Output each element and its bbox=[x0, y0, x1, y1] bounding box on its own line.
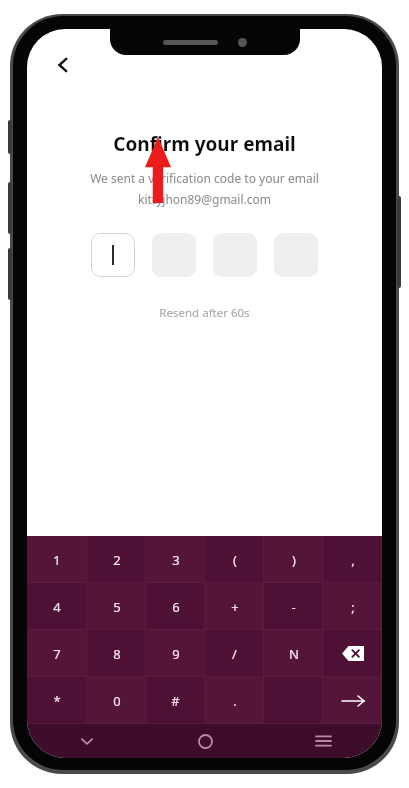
button[interactable]: * bbox=[27, 677, 87, 724]
button[interactable]: Backspace bbox=[323, 630, 382, 677]
button[interactable]: ) bbox=[264, 536, 323, 583]
button[interactable]: # bbox=[146, 677, 205, 724]
button[interactable]: ; bbox=[323, 583, 382, 630]
button[interactable]: Recents bbox=[264, 724, 382, 758]
button[interactable]: , bbox=[323, 536, 382, 583]
staticText: 6 bbox=[172, 598, 180, 616]
button[interactable]: + bbox=[205, 583, 264, 630]
button[interactable]: / bbox=[205, 630, 264, 677]
staticText: # bbox=[171, 692, 180, 710]
button[interactable]: 2 bbox=[87, 536, 146, 583]
button[interactable]: Home bbox=[146, 724, 264, 758]
staticText: + bbox=[231, 598, 239, 616]
button[interactable]: 9 bbox=[146, 630, 205, 677]
button[interactable]: 7 bbox=[27, 630, 87, 677]
button[interactable]: . bbox=[205, 677, 264, 724]
staticText: . bbox=[233, 692, 237, 710]
button[interactable]: 8 bbox=[87, 630, 146, 677]
button[interactable]: Code digit 1 bbox=[91, 233, 135, 277]
staticText: 7 bbox=[53, 645, 61, 663]
staticText: 2 bbox=[113, 551, 121, 569]
staticText: 5 bbox=[113, 598, 121, 616]
staticText: We sent a verification code to your emai… bbox=[43, 170, 366, 186]
staticText: , bbox=[351, 551, 355, 569]
staticText: N bbox=[289, 645, 299, 663]
staticText: * bbox=[53, 692, 61, 710]
button[interactable]: Hide keyboard bbox=[27, 724, 146, 758]
staticText: Confirm your email bbox=[27, 131, 382, 157]
staticText: ) bbox=[292, 551, 296, 569]
button[interactable]: 1 bbox=[27, 536, 87, 583]
button[interactable]: Resend after 60s bbox=[27, 305, 382, 321]
staticText: 8 bbox=[113, 645, 121, 663]
staticText: - bbox=[291, 598, 296, 616]
staticText: 4 bbox=[53, 598, 61, 616]
button[interactable]: 4 bbox=[27, 583, 87, 630]
button[interactable]: Enter bbox=[323, 677, 382, 724]
staticText: 3 bbox=[172, 551, 180, 569]
staticText: ( bbox=[233, 551, 237, 569]
staticText: 9 bbox=[172, 645, 180, 663]
button[interactable]: N bbox=[264, 630, 323, 677]
staticText: ; bbox=[351, 598, 355, 616]
button[interactable]: 0 bbox=[87, 677, 146, 724]
staticText: 0 bbox=[113, 692, 121, 710]
button[interactable]: 5 bbox=[87, 583, 146, 630]
button[interactable]: Back bbox=[43, 45, 83, 85]
button[interactable]: ( bbox=[205, 536, 264, 583]
staticText: 1 bbox=[53, 551, 61, 569]
button[interactable]: 3 bbox=[146, 536, 205, 583]
staticText: kittyjhon89@gmail.com bbox=[27, 191, 382, 207]
staticText: / bbox=[232, 645, 237, 663]
button[interactable]: 6 bbox=[146, 583, 205, 630]
button[interactable]: - bbox=[264, 583, 323, 630]
